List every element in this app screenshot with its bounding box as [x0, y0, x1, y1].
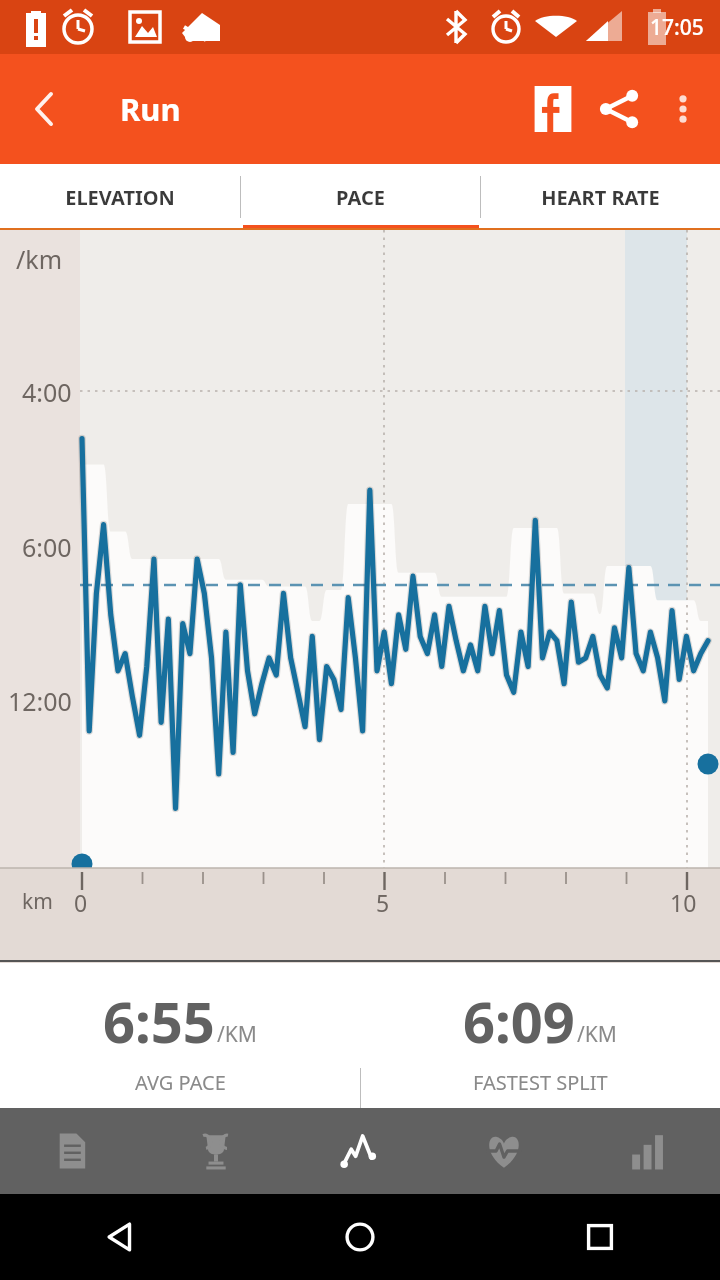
staticText: Run [120, 88, 181, 130]
button[interactable]: Heart rate [432, 1108, 576, 1194]
button[interactable]: ELEVATION [0, 164, 240, 230]
button[interactable]: Back [16, 81, 72, 137]
button[interactable]: Achievements [144, 1108, 288, 1194]
button[interactable]: Home [240, 1194, 480, 1280]
button[interactable]: Graphs [288, 1108, 432, 1194]
staticText: ELEVATION [65, 184, 175, 211]
staticText: 0 [74, 887, 88, 918]
staticText: 17:05 [650, 13, 704, 42]
button[interactable]: Back [0, 1194, 240, 1280]
staticText: 6:55 [103, 983, 215, 1059]
button[interactable]: Recents [480, 1194, 720, 1280]
staticText: km [22, 887, 53, 916]
staticText: 6:09 [463, 983, 575, 1059]
button[interactable]: 6:09 [360, 963, 720, 1108]
staticText: AVG PACE [135, 1069, 226, 1096]
staticText: 5 [376, 887, 390, 918]
button[interactable]: PACE [241, 164, 480, 230]
button[interactable]: HEART RATE [481, 164, 720, 230]
button[interactable]: Share to Facebook [520, 76, 586, 142]
staticText: 10 [670, 887, 697, 918]
staticText: 4:00 [22, 375, 72, 409]
staticText: /KM [217, 1020, 257, 1049]
button[interactable]: Stats [576, 1108, 720, 1194]
staticText: HEART RATE [541, 184, 660, 211]
staticText: FASTEST SPLIT [473, 1069, 608, 1096]
staticText: PACE [336, 184, 385, 211]
button[interactable]: 6:55 [0, 963, 360, 1108]
staticText: 6:00 [22, 530, 72, 564]
staticText: /km [16, 242, 63, 276]
staticText: 12:00 [8, 684, 72, 718]
button[interactable]: Summary [0, 1108, 144, 1194]
button[interactable]: More options [652, 78, 714, 140]
button[interactable]: Share [586, 76, 652, 142]
staticText: /KM [577, 1020, 617, 1049]
